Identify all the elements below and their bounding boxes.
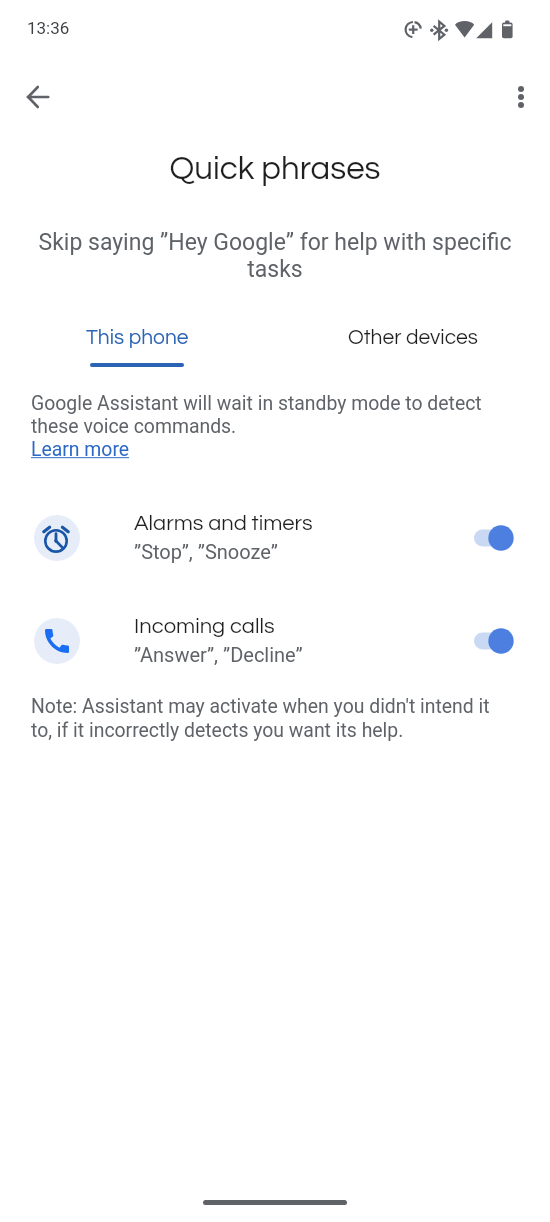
staticText: Quick phrases xyxy=(0,152,550,186)
button[interactable]: Toggle xyxy=(474,623,528,659)
button[interactable]: Other devices xyxy=(275,327,550,375)
staticText: Google Assistant will wait in standby mo… xyxy=(31,392,511,438)
button[interactable]: This phone xyxy=(0,327,275,375)
staticText: Alarms and timers xyxy=(134,512,313,535)
staticText: 13:36 xyxy=(27,18,70,38)
staticText: ”Stop”, ”Snooze” xyxy=(134,540,278,563)
button[interactable]: Learn more xyxy=(31,438,130,461)
button[interactable]: More options xyxy=(497,73,545,121)
staticText: ”Answer”, ”Decline” xyxy=(134,643,303,666)
staticText: Note: Assistant may activate when you di… xyxy=(31,695,511,742)
staticText: Incoming calls xyxy=(134,615,275,638)
staticText: Other devices xyxy=(348,327,478,349)
staticText: This phone xyxy=(86,327,189,349)
button[interactable]: Back xyxy=(14,73,62,121)
button[interactable]: Alarms and timers xyxy=(0,512,550,563)
staticText: Skip saying ”Hey Google” for help with s… xyxy=(38,229,512,283)
button[interactable]: Incoming calls xyxy=(0,615,550,666)
button[interactable]: Toggle xyxy=(474,520,528,556)
